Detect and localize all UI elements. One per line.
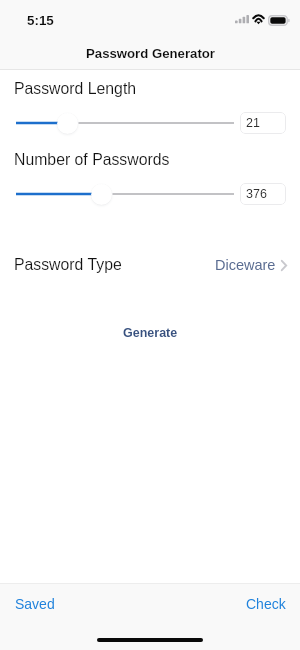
staticText: Password Length <box>14 80 137 98</box>
staticText: 5:15 <box>27 13 54 28</box>
other: Wi-Fi <box>252 15 265 24</box>
staticText: 21 <box>246 116 260 130</box>
button[interactable]: Password length thumb <box>57 113 78 134</box>
button[interactable]: Saved <box>0 587 67 621</box>
staticText: Password Generator <box>86 46 215 61</box>
other: Battery full <box>268 15 290 26</box>
staticText: 376 <box>246 187 267 201</box>
staticText: Check <box>246 596 286 612</box>
button[interactable]: Password length <box>10 111 240 135</box>
staticText: Password Type <box>14 256 122 274</box>
button[interactable]: Generate <box>109 322 192 344</box>
button[interactable]: 376 <box>240 183 286 205</box>
staticText: Saved <box>15 596 55 612</box>
button[interactable]: 21 <box>240 112 286 134</box>
button[interactable]: Number of passwords <box>10 182 240 206</box>
button[interactable]: Check <box>234 587 300 621</box>
staticText: Diceware <box>215 257 276 273</box>
staticText: Number of Passwords <box>14 151 170 169</box>
other: Cellular signal <box>235 15 249 24</box>
button[interactable]: Password Type <box>0 252 300 278</box>
button[interactable]: Number of passwords thumb <box>91 184 112 205</box>
staticText: Generate <box>123 326 178 340</box>
